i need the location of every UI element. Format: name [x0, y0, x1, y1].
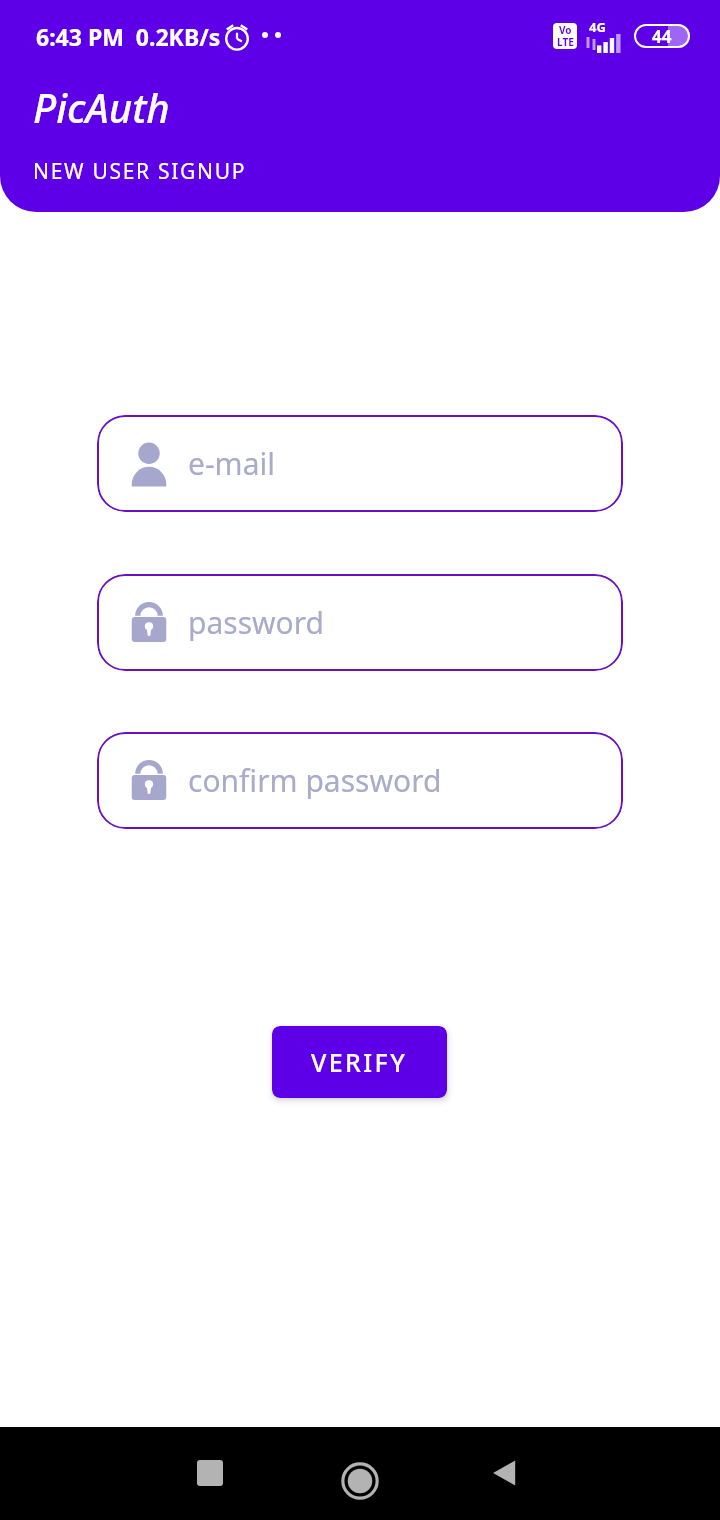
staticText: 6:43 PM 0.2KB/s	[36, 21, 221, 52]
button[interactable]: password	[97, 574, 623, 671]
staticText: 4G	[589, 18, 606, 36]
button[interactable]: Recents	[197, 1460, 223, 1486]
staticText: e-mail	[188, 443, 275, 484]
button[interactable]: Home	[325, 1446, 395, 1516]
staticText: VERIFY	[311, 1045, 408, 1079]
button[interactable]: confirm password	[97, 732, 623, 829]
button[interactable]: Back	[488, 1458, 522, 1488]
button[interactable]: e-mail	[97, 415, 623, 512]
staticText: 44	[652, 25, 672, 48]
staticText: Vo	[559, 23, 572, 37]
staticText: confirm password	[188, 760, 442, 801]
staticText: LTE	[557, 35, 574, 49]
staticText: PicAuth	[33, 80, 170, 134]
button[interactable]: VERIFY	[272, 1026, 447, 1098]
staticText: password	[188, 602, 324, 643]
staticText: NEW USER SIGNUP	[33, 157, 247, 186]
